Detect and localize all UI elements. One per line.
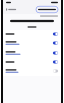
- button[interactable]: [3, 48, 61, 58]
- button[interactable]: Toggle: [52, 69, 58, 73]
- button[interactable]: [3, 66, 61, 76]
- button[interactable]: [36, 6, 58, 13]
- button[interactable]: Toggle: [52, 60, 58, 64]
- button[interactable]: [3, 30, 61, 38]
- button[interactable]: [3, 38, 61, 48]
- button[interactable]: [3, 58, 61, 66]
- button[interactable]: Toggle: [52, 51, 58, 55]
- button[interactable]: Toggle: [52, 32, 58, 36]
- button[interactable]: [6, 8, 16, 11]
- button[interactable]: Toggle: [52, 41, 58, 45]
